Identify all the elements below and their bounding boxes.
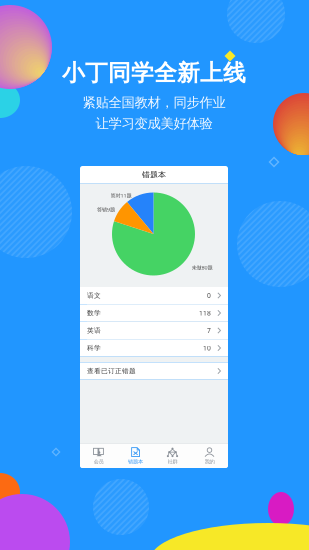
button[interactable]: 语文 (80, 287, 228, 304)
staticText: 语文 (87, 291, 101, 300)
staticText: 科学 (87, 344, 101, 352)
staticText: 10 (203, 344, 211, 352)
button[interactable]: 查看已订正错题 (80, 362, 228, 379)
staticText: 社群 (167, 458, 177, 465)
button[interactable]: 英语 (80, 322, 228, 339)
staticText: 错题本 (142, 170, 166, 180)
staticText: 让学习变成美好体验 (95, 115, 212, 132)
staticText: 未做80题 (191, 264, 212, 271)
button[interactable]: 科学 (80, 339, 228, 356)
staticText: 小丁同学全新上线 (62, 59, 246, 87)
staticText: 会员 (93, 458, 103, 465)
button[interactable]: 社群 (154, 444, 191, 468)
staticText: 错题本 (128, 458, 143, 465)
staticText: 我的 (204, 458, 214, 465)
staticText: 答对11题 (110, 192, 131, 199)
staticText: 答错9题 (97, 206, 115, 213)
staticText: 查看已订正错题 (87, 367, 136, 375)
staticText: 英语 (87, 326, 101, 335)
button[interactable]: 会员 (80, 444, 117, 468)
button[interactable]: 我的 (191, 444, 228, 468)
staticText: 数学 (87, 309, 101, 317)
button[interactable]: 错题本 (117, 444, 154, 468)
staticText: 0 (207, 291, 211, 300)
staticText: 紧贴全国教材，同步作业 (82, 94, 225, 111)
button[interactable]: 数学 (80, 304, 228, 321)
staticText: 7 (207, 326, 211, 335)
staticText: 118 (199, 309, 211, 317)
